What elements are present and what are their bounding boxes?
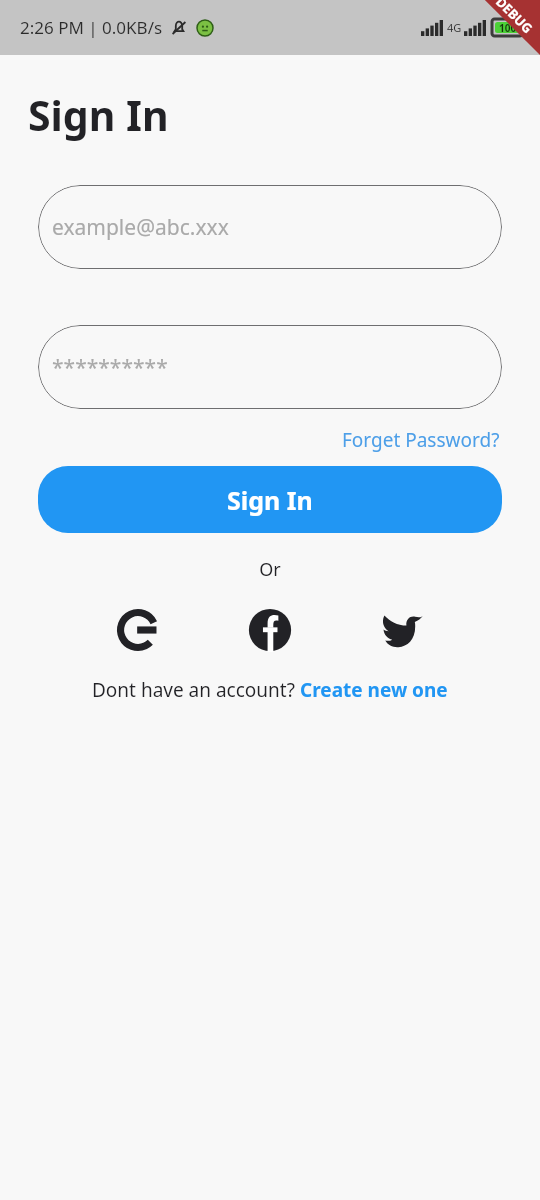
staticText: Forget Password?: [342, 427, 500, 453]
staticText: Create new one: [300, 677, 448, 703]
button[interactable]: Sign in with Twitter: [363, 605, 441, 655]
button[interactable]: Forget Password?: [340, 425, 502, 455]
staticText: example@abc.xxx: [52, 213, 229, 242]
staticText: **********: [52, 353, 168, 382]
staticText: Sign In: [28, 87, 169, 143]
staticText: 2:26 PM | 0.0KB/s: [20, 16, 163, 39]
staticText: 4G: [447, 20, 462, 35]
staticText: Dont have an account?: [92, 677, 300, 703]
button[interactable]: Sign in with Facebook: [231, 605, 309, 655]
staticText: DEBUG: [492, 0, 537, 37]
staticText: Or: [0, 557, 540, 582]
staticText: 100: [499, 21, 517, 35]
button[interactable]: Create new one: [300, 677, 448, 703]
button[interactable]: example@abc.xxx: [38, 185, 502, 269]
button[interactable]: Sign In: [38, 466, 502, 533]
button[interactable]: Sign in with Google: [99, 605, 177, 655]
button[interactable]: **********: [38, 325, 502, 409]
staticText: Sign In: [227, 483, 313, 517]
